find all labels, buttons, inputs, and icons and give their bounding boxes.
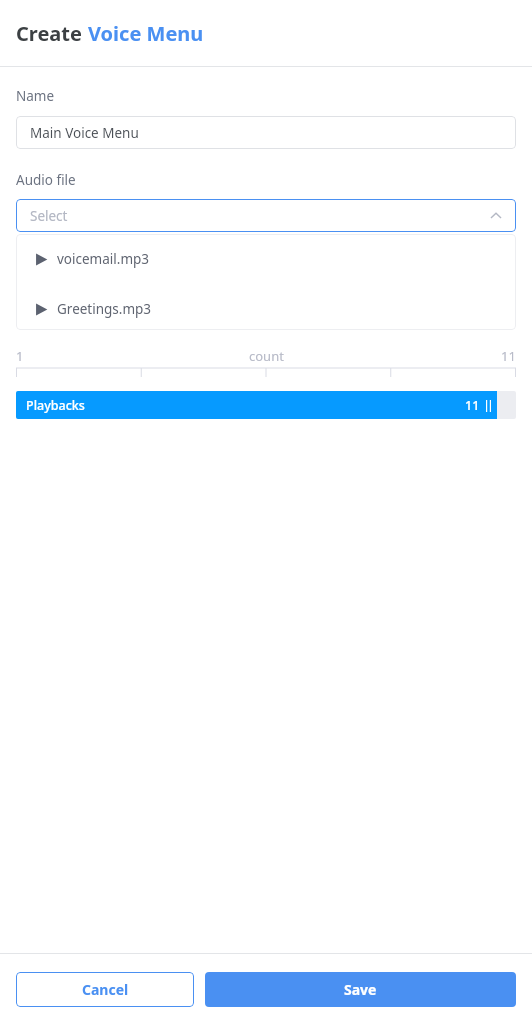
button[interactable]: Greetings.mp3 [16,290,516,328]
staticText: Create [16,20,88,47]
staticText: Playbacks [26,397,85,414]
staticText: Greetings.mp3 [57,300,152,318]
staticText: Save [344,980,377,999]
staticText: 11 [465,397,480,414]
button[interactable]: Save [205,972,516,1007]
staticText: Main Voice Menu [30,124,139,142]
staticText: voicemail.mp3 [57,250,150,268]
button[interactable]: Cancel [16,972,194,1007]
staticText: 1 [16,347,24,365]
staticText: Audio file [16,171,76,189]
staticText: 11 [501,347,516,365]
staticText: Select [30,207,68,225]
button[interactable]: Playbacks [16,391,516,419]
button[interactable]: Main Voice Menu [16,116,516,149]
staticText: Cancel [82,980,129,999]
staticText: Voice Menu [88,20,204,47]
staticText: count [249,347,284,365]
button[interactable]: voicemail.mp3 [16,240,516,278]
button[interactable]: Select [16,199,516,232]
other: Collapse [490,210,502,222]
staticText: Name [16,87,55,105]
